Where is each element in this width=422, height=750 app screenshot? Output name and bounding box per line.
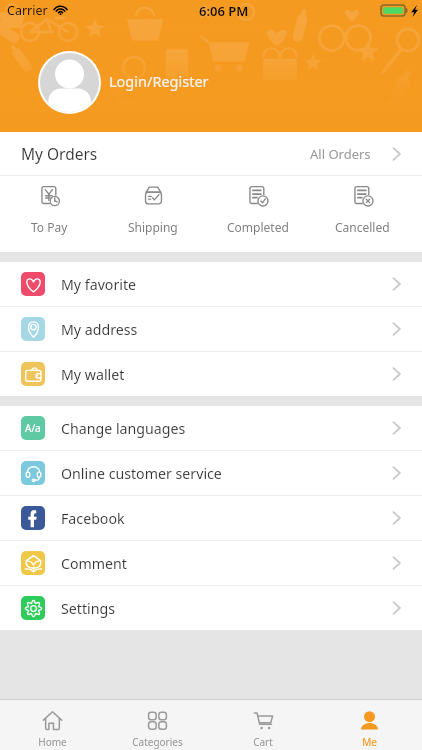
staticText: Online customer service: [61, 464, 222, 483]
staticText: My address: [61, 320, 138, 339]
button[interactable]: Avatar: [40, 53, 99, 112]
staticText: Me: [362, 735, 377, 749]
staticText: Comment: [61, 554, 127, 573]
button[interactable]: My wallet: [0, 352, 422, 396]
button[interactable]: A/a: [0, 406, 422, 450]
button[interactable]: Facebook: [0, 496, 422, 540]
button[interactable]: Cancelled: [310, 176, 415, 235]
button[interactable]: Home: [0, 702, 105, 749]
staticText: Cart: [253, 735, 273, 749]
staticText: Categories: [132, 735, 183, 749]
button[interactable]: Me: [316, 702, 422, 749]
staticText: Completed: [227, 219, 289, 235]
button[interactable]: Categories: [105, 702, 210, 749]
staticText: My Orders: [21, 143, 98, 164]
staticText: Shipping: [128, 219, 178, 235]
button[interactable]: Shipping: [101, 176, 205, 235]
staticText: Cancelled: [335, 219, 390, 235]
staticText: Home: [38, 735, 67, 749]
staticText: My wallet: [61, 365, 125, 384]
button[interactable]: To Pay: [0, 176, 101, 235]
staticText: All Orders: [310, 145, 371, 163]
button[interactable]: Comment: [0, 541, 422, 585]
button[interactable]: My address: [0, 307, 422, 351]
staticText: Carrier: [7, 2, 48, 19]
button[interactable]: My favorite: [0, 262, 422, 306]
button[interactable]: Completed: [205, 176, 310, 235]
button[interactable]: Online customer service: [0, 451, 422, 495]
button[interactable]: Cart: [210, 702, 316, 749]
staticText: Settings: [61, 599, 115, 618]
staticText: My favorite: [61, 275, 137, 294]
staticText: 6:06 PM: [199, 2, 249, 20]
staticText: Login/Register: [109, 71, 209, 91]
staticText: To Pay: [31, 219, 68, 235]
button[interactable]: My Orders: [0, 132, 422, 175]
button[interactable]: Settings: [0, 586, 422, 630]
staticText: Change languages: [61, 419, 186, 438]
staticText: Facebook: [61, 509, 125, 528]
staticText: A/a: [25, 421, 41, 435]
